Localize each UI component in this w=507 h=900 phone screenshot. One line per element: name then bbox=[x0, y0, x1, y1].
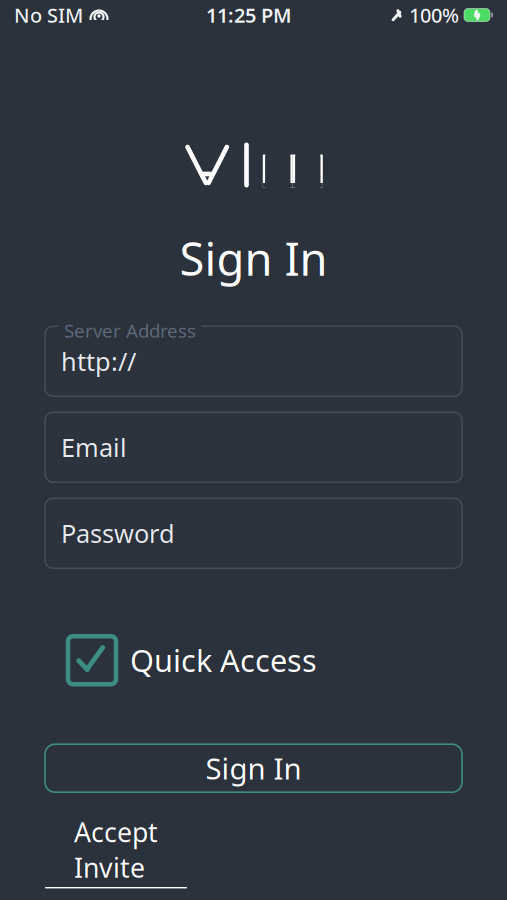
staticText: 100% bbox=[409, 2, 459, 28]
staticText: Sign In bbox=[205, 749, 301, 788]
staticText: Password bbox=[61, 516, 175, 550]
staticText: http:// bbox=[61, 344, 136, 378]
staticText: Server Address bbox=[64, 318, 196, 343]
button[interactable]: Sign In bbox=[45, 744, 462, 792]
staticText: Sign In bbox=[179, 228, 327, 288]
staticText: No SIM bbox=[14, 2, 83, 28]
staticText: 11:25 PM bbox=[206, 2, 292, 28]
button[interactable]: Quick Access bbox=[0, 636, 507, 684]
staticText: Accept Invite bbox=[74, 814, 158, 885]
button[interactable]: Accept Invite bbox=[45, 814, 187, 888]
staticText: Email bbox=[61, 430, 127, 464]
staticText: Quick Access bbox=[130, 640, 317, 680]
